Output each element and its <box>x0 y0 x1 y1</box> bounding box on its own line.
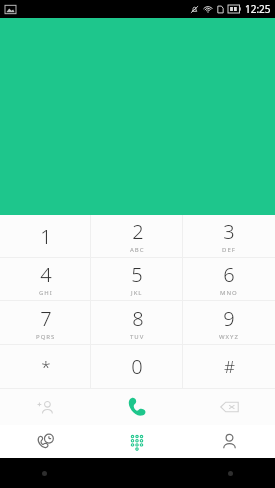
staticText: JKL <box>131 289 143 297</box>
staticText: 2 <box>132 218 144 245</box>
button[interactable]: 7 <box>0 301 91 344</box>
button[interactable]: 0 <box>91 345 183 388</box>
button[interactable]: 4 <box>0 258 91 300</box>
button[interactable]: 5 <box>91 258 183 300</box>
button[interactable]: Recents <box>228 471 233 476</box>
staticText: # <box>224 355 235 378</box>
staticText: * <box>41 355 51 378</box>
staticText: PQRS <box>36 333 56 341</box>
button[interactable]: Back <box>42 471 47 476</box>
staticText: 8 <box>132 305 144 332</box>
staticText: WXYZ <box>219 333 239 341</box>
button[interactable]: Contacts <box>183 425 275 458</box>
staticText: DEF <box>222 246 236 254</box>
staticText: 7 <box>40 305 52 332</box>
staticText: 4 <box>40 261 52 288</box>
button[interactable]: Call history <box>0 425 91 458</box>
button[interactable]: 2 <box>91 215 183 257</box>
button[interactable]: Dialpad <box>91 425 183 458</box>
button[interactable]: Add contact <box>0 389 91 425</box>
staticText: GHI <box>39 289 53 297</box>
button[interactable]: 1 <box>0 215 91 257</box>
staticText: MNO <box>220 289 238 297</box>
staticText: 5 <box>131 261 143 288</box>
staticText: 12:25 <box>245 2 271 16</box>
staticText: 9 <box>223 305 235 332</box>
staticText: TUV <box>130 333 145 341</box>
button[interactable]: Call <box>91 389 183 425</box>
button[interactable]: * <box>0 345 91 388</box>
button[interactable]: Backspace <box>183 389 275 425</box>
button[interactable]: 9 <box>183 301 275 344</box>
staticText: 3 <box>223 218 235 245</box>
staticText: 6 <box>223 261 235 288</box>
button[interactable]: # <box>183 345 275 388</box>
button[interactable]: 6 <box>183 258 275 300</box>
button[interactable]: 3 <box>183 215 275 257</box>
staticText: 0 <box>131 353 143 380</box>
button[interactable]: 8 <box>91 301 183 344</box>
staticText: ABC <box>130 246 145 254</box>
staticText: 1 <box>40 223 52 250</box>
